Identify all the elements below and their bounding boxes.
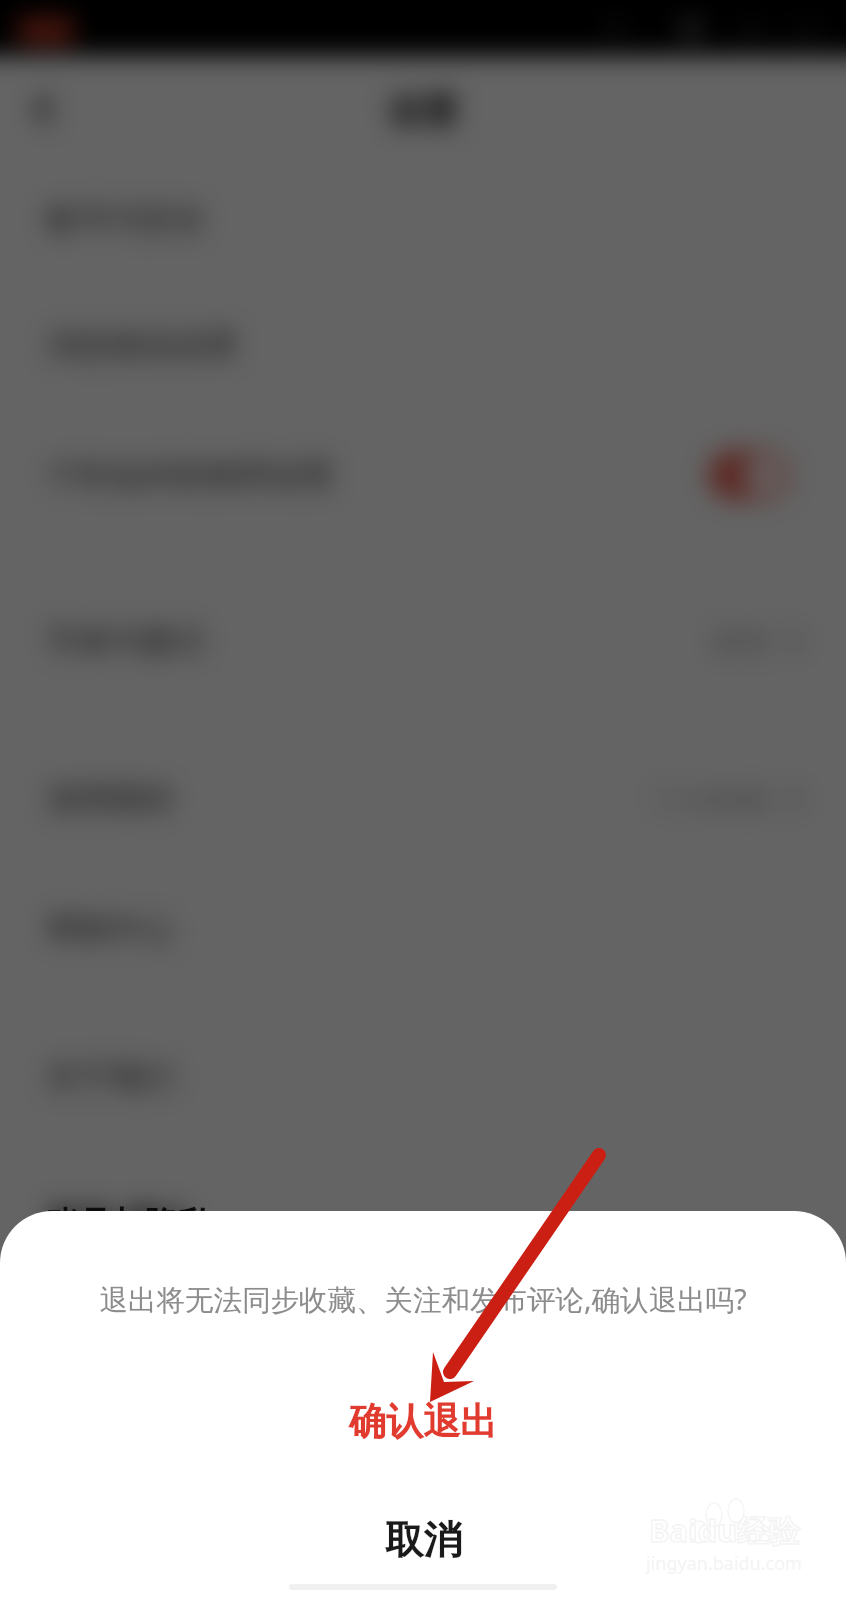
button[interactable]: 个性化内容推荐设置 xyxy=(0,408,846,542)
staticText: 退出将无法同步收藏、关注和发布评论,确认退出吗? xyxy=(0,1280,846,1319)
staticText: 确认退出 xyxy=(349,1398,497,1445)
staticText: 消息推送设置 xyxy=(46,325,238,365)
staticText: 字体与显示 xyxy=(46,621,206,661)
staticText: 登录/退出 xyxy=(46,1199,192,1244)
button[interactable]: 取消 xyxy=(0,1508,846,1572)
staticText: 关于我们 xyxy=(46,1057,174,1097)
button[interactable]: 清理缓存 xyxy=(0,734,846,864)
staticText: 账号与安全 xyxy=(46,199,206,239)
button[interactable]: 确认退出 xyxy=(0,1389,846,1453)
staticText: 清理缓存 xyxy=(46,779,174,819)
staticText: 账号与隐私 xyxy=(46,1203,211,1245)
staticText: 取消 xyxy=(385,1516,462,1565)
button[interactable]: 消息推送设置 xyxy=(0,282,846,408)
staticText: 个性化内容推荐设置 xyxy=(46,455,334,495)
staticText: Baidu经验 xyxy=(649,1509,800,1551)
staticText: 帮助中心 xyxy=(46,909,174,949)
button[interactable]: 账号与安全 xyxy=(0,156,846,282)
button[interactable]: Back xyxy=(22,87,66,131)
staticText: jingyan.baidu.com xyxy=(646,1551,802,1576)
button[interactable]: 字体与显示 xyxy=(0,576,846,706)
button[interactable]: 登录/退出 xyxy=(0,1156,846,1286)
staticText: 设置 xyxy=(388,89,458,133)
